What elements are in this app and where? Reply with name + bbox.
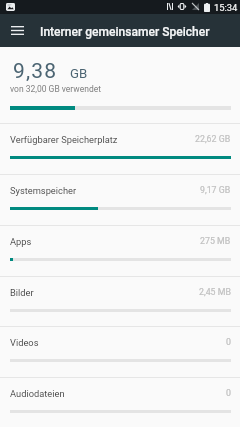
staticText: 2,45 MB (199, 287, 231, 297)
staticText: Systemspeicher (10, 185, 77, 196)
staticText: Apps (10, 236, 32, 247)
staticText: GB (70, 66, 88, 81)
button[interactable]: Bilder (0, 277, 240, 327)
button[interactable]: Systemspeicher (0, 175, 240, 226)
button[interactable]: Apps (0, 226, 240, 277)
staticText: Verfügbarer Speicherplatz (10, 134, 118, 145)
staticText: 22,62 GB (195, 134, 231, 144)
staticText: Videos (10, 337, 39, 348)
staticText: 15:34 (214, 2, 238, 13)
staticText: Audiodateien (10, 388, 65, 399)
button[interactable]: Open navigation menu (5, 19, 29, 43)
staticText: Bilder (10, 287, 34, 298)
staticText: 0 (226, 388, 231, 398)
staticText: Interner gemeinsamer Speicher (40, 25, 210, 39)
button[interactable]: Videos (0, 327, 240, 378)
staticText: 275 MB (200, 236, 231, 246)
staticText: von 32,00 GB verwendet (10, 84, 101, 94)
staticText: 9,38 (13, 59, 58, 84)
button[interactable]: Verfügbarer Speicherplatz (0, 124, 240, 175)
staticText: 0 (226, 337, 231, 347)
button[interactable]: Audiodateien (0, 378, 240, 427)
staticText: 9,17 GB (200, 185, 231, 195)
